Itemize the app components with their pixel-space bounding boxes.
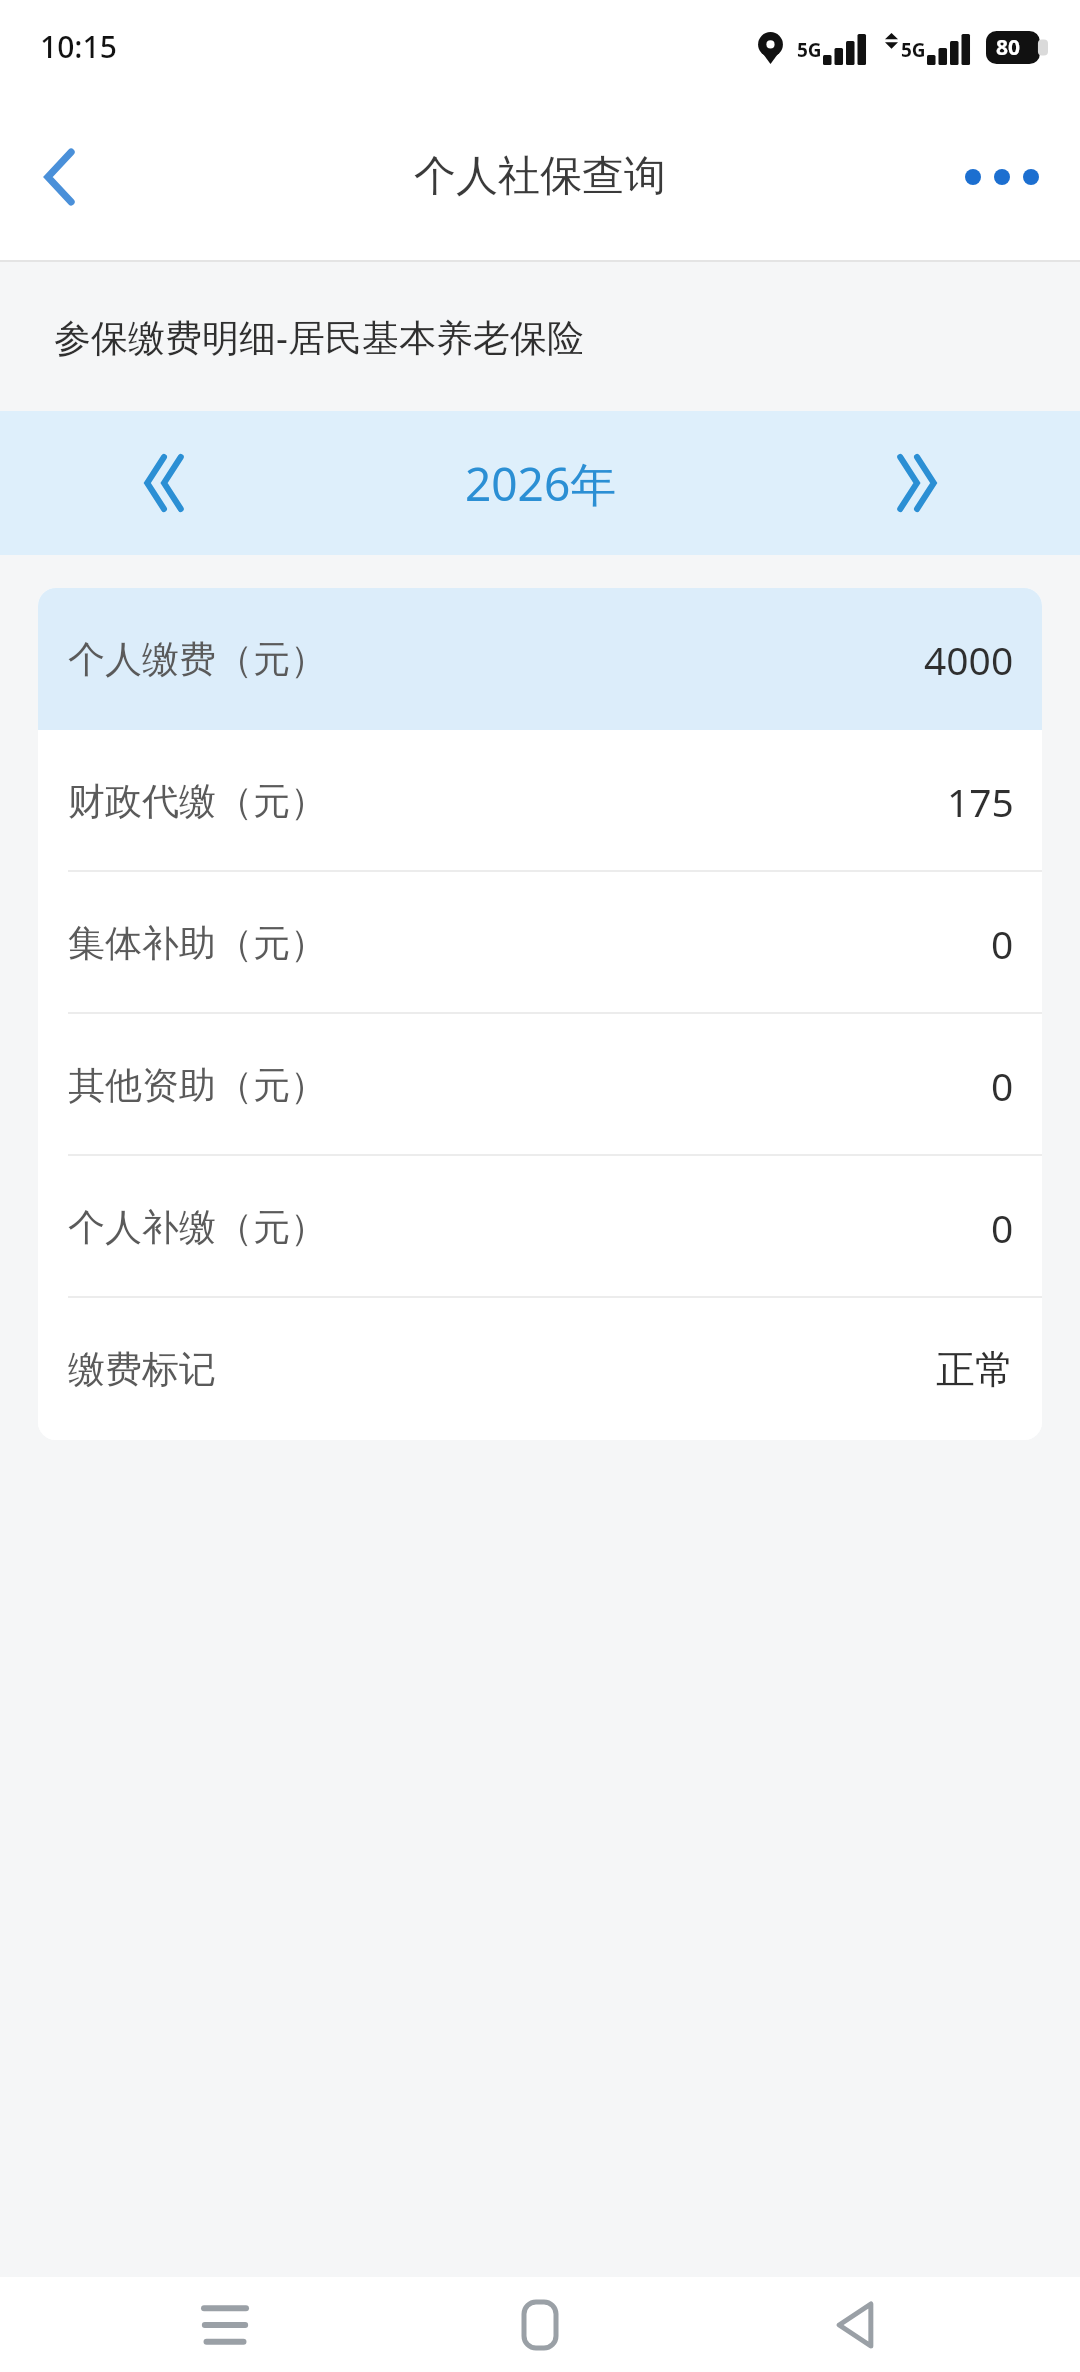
button[interactable]: 集体补助（元） <box>38 872 1042 1014</box>
button[interactable]: Home <box>450 2277 630 2372</box>
staticText: 5G <box>901 37 926 63</box>
staticText: 175 <box>947 775 1014 828</box>
staticText: 个人缴费（元） <box>68 636 327 683</box>
staticText: 参保缴费明细-居民基本养老保险 <box>54 311 584 362</box>
button[interactable]: 个人缴费（元） <box>38 588 1042 730</box>
staticText: 0 <box>991 917 1014 970</box>
staticText: 10:15 <box>40 26 117 67</box>
button[interactable]: Back <box>765 2277 945 2372</box>
staticText: 财政代缴（元） <box>68 778 327 825</box>
button[interactable]: 其他资助（元） <box>38 1014 1042 1156</box>
button[interactable]: 缴费标记 <box>38 1298 1042 1440</box>
staticText: 缴费标记 <box>68 1346 216 1393</box>
staticText: 80 <box>996 33 1021 62</box>
staticText: 正常 <box>936 1345 1014 1394</box>
button[interactable]: 2026年 <box>328 411 753 555</box>
button[interactable]: Previous year <box>0 411 328 555</box>
staticText: 0 <box>991 1201 1014 1254</box>
button[interactable]: Next year <box>753 411 1080 555</box>
staticText: 集体补助（元） <box>68 920 327 967</box>
button[interactable]: 财政代缴（元） <box>38 730 1042 872</box>
staticText: 2026年 <box>465 452 617 515</box>
button[interactable]: Recent apps <box>135 2277 315 2372</box>
staticText: 个人社保查询 <box>414 150 666 203</box>
button[interactable]: More options <box>942 122 1062 232</box>
staticText: 5G <box>797 37 822 63</box>
staticText: 0 <box>991 1059 1014 1112</box>
staticText: 其他资助（元） <box>68 1062 327 1109</box>
staticText: 个人补缴（元） <box>68 1204 327 1251</box>
button[interactable]: 个人补缴（元） <box>38 1156 1042 1298</box>
button[interactable]: Back <box>0 117 120 237</box>
staticText: 4000 <box>924 633 1014 686</box>
